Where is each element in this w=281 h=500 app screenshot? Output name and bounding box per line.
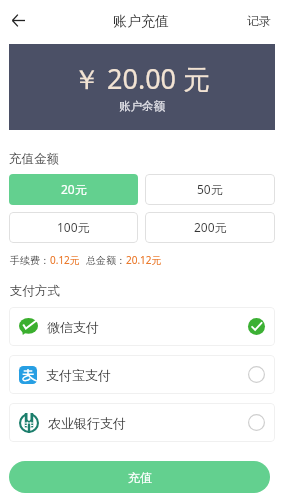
staticText: 0.12元 bbox=[50, 253, 80, 267]
staticText: 50元 bbox=[197, 181, 223, 197]
staticText: 支付方式 bbox=[10, 283, 60, 299]
button[interactable]: 支付宝支付 bbox=[9, 355, 275, 394]
button[interactable]: 100元 bbox=[9, 212, 138, 243]
staticText: 账户充值 bbox=[113, 13, 169, 31]
staticText: 手续费： bbox=[10, 254, 50, 267]
staticText: 总金额： bbox=[86, 254, 126, 267]
button[interactable]: 200元 bbox=[145, 212, 275, 243]
button[interactable]: 微信支付 bbox=[9, 307, 275, 346]
button[interactable]: 充值 bbox=[9, 461, 270, 493]
button[interactable]: 农业银行支付 bbox=[9, 403, 275, 442]
staticText: 账户余额 bbox=[119, 99, 165, 113]
staticText: 充值金额 bbox=[9, 151, 59, 167]
staticText: ￥ 20.00 元 bbox=[73, 60, 211, 97]
button[interactable]: Back bbox=[6, 0, 30, 40]
button[interactable]: 20元 bbox=[9, 174, 138, 205]
staticText: 微信支付 bbox=[47, 319, 99, 335]
button[interactable]: 50元 bbox=[145, 174, 275, 205]
staticText: 支付宝支付 bbox=[46, 367, 111, 383]
staticText: 20.12元 bbox=[126, 253, 162, 267]
staticText: 100元 bbox=[57, 219, 90, 235]
staticText: 记录 bbox=[247, 13, 271, 28]
button[interactable]: 记录 bbox=[237, 0, 281, 40]
staticText: 充值 bbox=[128, 470, 152, 485]
staticText: 农业银行支付 bbox=[48, 415, 126, 431]
staticText: 200元 bbox=[194, 219, 227, 235]
staticText: 20元 bbox=[61, 181, 87, 197]
